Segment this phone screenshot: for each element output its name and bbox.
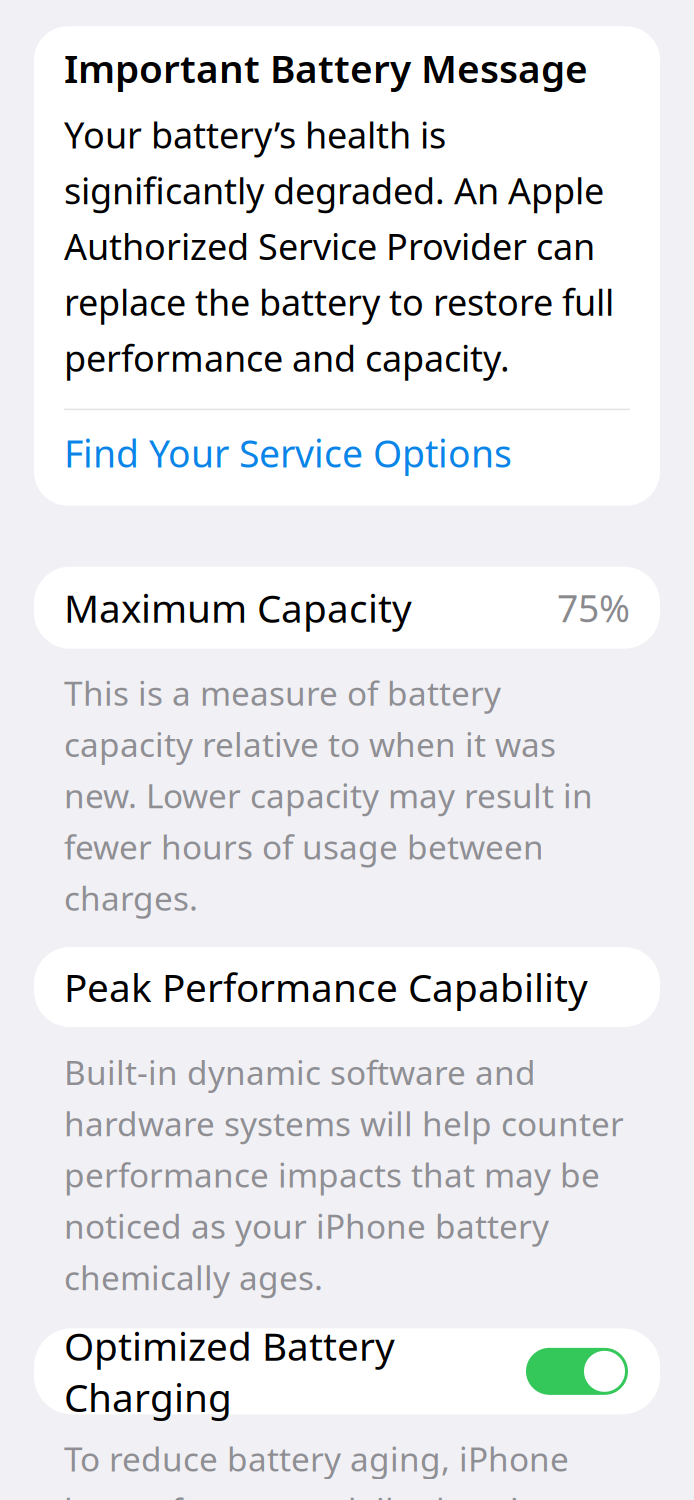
staticText: Peak Performance Capability bbox=[64, 961, 588, 1013]
staticText: Important Battery Message bbox=[64, 42, 588, 93]
button[interactable]: Find Your Service Options bbox=[64, 410, 630, 496]
button[interactable]: Optimized Battery Charging bbox=[34, 1328, 660, 1414]
button[interactable]: Peak Performance Capability bbox=[34, 947, 660, 1027]
button[interactable]: Maximum Capacity bbox=[34, 567, 660, 649]
staticText: Built-in dynamic software and hardware s… bbox=[64, 1050, 624, 1299]
staticText: Find Your Service Options bbox=[64, 428, 512, 478]
staticText: 75% bbox=[557, 583, 630, 632]
staticText: To reduce battery aging, iPhone learns f… bbox=[64, 1436, 594, 1500]
staticText: Optimized Battery Charging bbox=[64, 1320, 395, 1423]
staticText: Maximum Capacity bbox=[64, 582, 412, 633]
staticText: Your battery’s health is significantly d… bbox=[64, 111, 614, 382]
staticText: This is a measure of battery capacity re… bbox=[64, 671, 593, 920]
